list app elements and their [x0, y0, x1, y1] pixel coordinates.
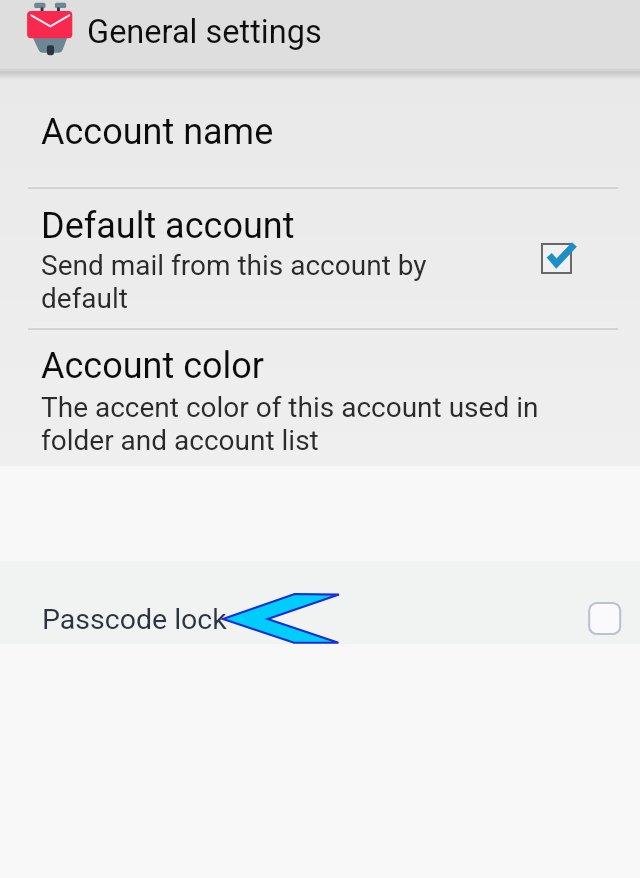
button[interactable]: Default account: [0, 189, 640, 329]
staticText: The accent color of this account used in…: [41, 391, 597, 457]
button[interactable]: Account color: [0, 330, 640, 466]
staticText: Account name: [41, 111, 274, 153]
staticText: Default account: [41, 205, 295, 247]
button[interactable]: Account name: [0, 70, 640, 188]
staticText: Passcode lock: [42, 603, 227, 636]
button[interactable]: Passcode lock checkbox: [581, 561, 629, 644]
staticText: Account color: [41, 345, 264, 387]
staticText: Send mail from this account by default: [41, 249, 446, 315]
button[interactable]: Navigate up - General settings: [0, 0, 340, 70]
button[interactable]: Default account checkbox: [534, 189, 580, 329]
button[interactable]: Passcode lock: [0, 561, 640, 644]
staticText: General settings: [87, 13, 322, 51]
